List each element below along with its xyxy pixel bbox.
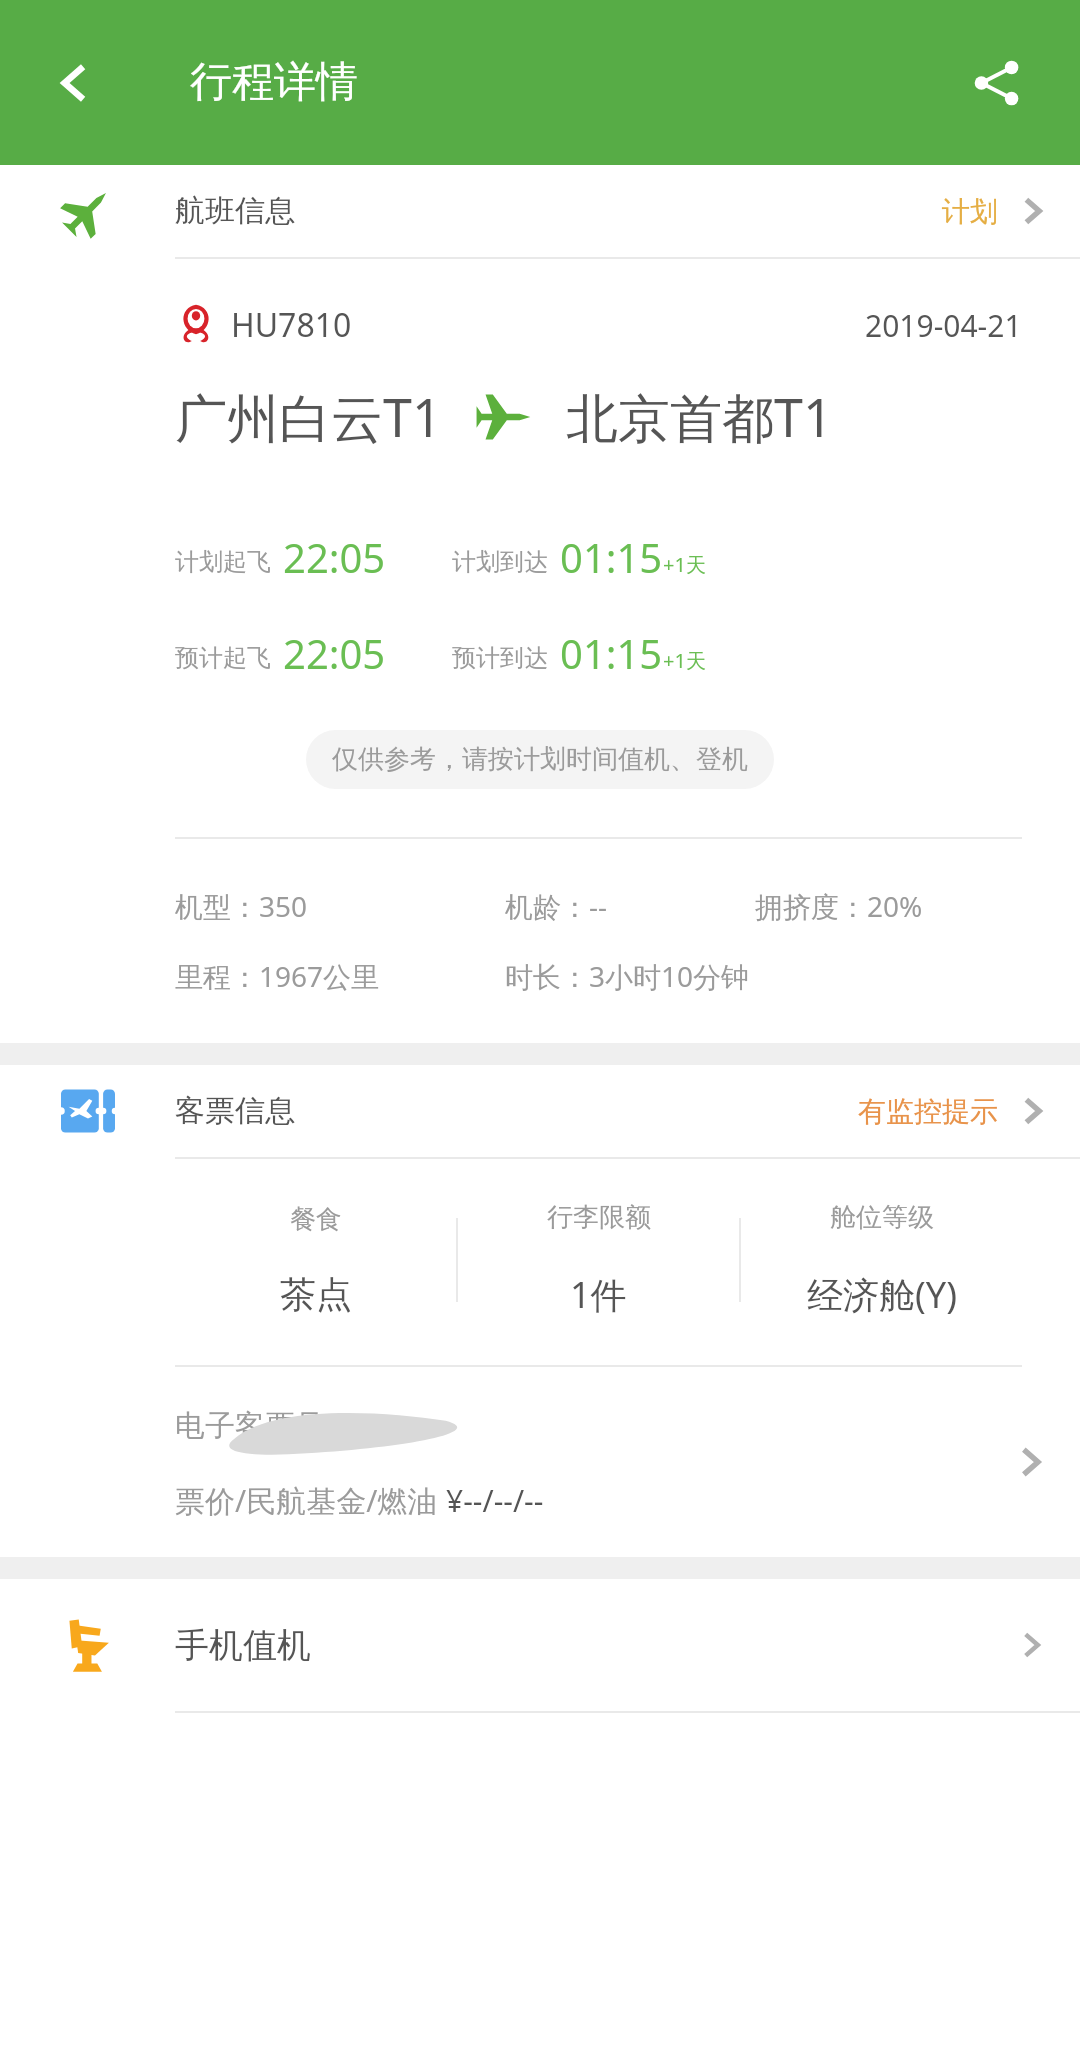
staticText: 预计起飞 — [175, 643, 271, 673]
staticText: 拥挤度：20% — [755, 887, 923, 925]
staticText: 经济舱(Y) — [807, 1270, 957, 1319]
staticText: 计划起飞 — [175, 547, 271, 577]
staticText: 计划 — [942, 194, 998, 229]
staticText: 机龄：-- — [505, 887, 755, 925]
button[interactable]: 电子客票号 — [0, 1367, 1080, 1557]
staticText: 里程：1967公里 — [175, 957, 505, 995]
staticText: 电子客票号 — [175, 1404, 333, 1445]
button[interactable]: Share — [960, 47, 1032, 119]
staticText: 行李限额 — [547, 1201, 651, 1234]
staticText: 茶点 — [280, 1272, 352, 1317]
staticText: 票价/民航基金/燃油 — [175, 1480, 446, 1521]
staticText: HU7810 — [231, 303, 352, 347]
staticText: 计划到达 — [452, 547, 548, 577]
staticText: 01:15 — [560, 530, 663, 584]
button[interactable]: 客票信息 — [0, 1065, 1080, 1157]
staticText: 北京首都T1 — [566, 381, 833, 452]
staticText: 2019-04-21 — [865, 305, 1022, 346]
staticText: 1件 — [570, 1270, 627, 1319]
staticText: 机型：350 — [175, 887, 505, 925]
staticText: 仅供参考，请按计划时间值机、登机 — [332, 743, 748, 776]
staticText: ¥--/--/-- — [446, 1480, 544, 1521]
staticText: 有监控提示 — [858, 1094, 998, 1129]
staticText: 时长：3小时10分钟 — [505, 957, 750, 995]
staticText: 手机值机 — [175, 1624, 311, 1667]
staticText: 舱位等级 — [830, 1201, 934, 1234]
button[interactable]: 手机值机 — [0, 1579, 1080, 1711]
staticText: 01:15 — [560, 626, 663, 680]
button[interactable]: Back — [40, 48, 110, 118]
staticText: 22:05 — [283, 626, 386, 680]
staticText: 航班信息 — [175, 192, 295, 230]
staticText: +1天 — [663, 647, 706, 674]
staticText: 行程详情 — [190, 56, 358, 109]
staticText: 22:05 — [283, 530, 386, 584]
staticText: 餐食 — [290, 1203, 342, 1236]
staticText: 广州白云T1 — [175, 381, 442, 452]
staticText: 客票信息 — [175, 1092, 295, 1130]
staticText: 预计到达 — [452, 643, 548, 673]
button[interactable]: 航班信息 — [0, 165, 1080, 257]
staticText: 784 — [333, 1404, 385, 1445]
staticText: +1天 — [663, 551, 706, 578]
